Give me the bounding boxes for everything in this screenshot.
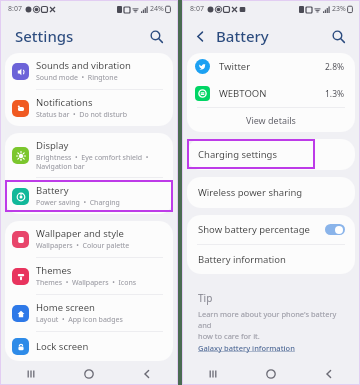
staticText: 8:07 [190, 4, 204, 14]
staticText: Twitter [219, 60, 325, 73]
staticText: Brightness • Eye comfort shield • Naviga… [36, 153, 149, 171]
button[interactable]: Wireless power sharing [187, 177, 355, 208]
button[interactable]: Search [145, 25, 167, 47]
staticText: Wallpapers • Colour palette [36, 241, 130, 251]
staticText: Learn more about your phone's battery an… [198, 309, 345, 341]
button[interactable]: Recents [202, 363, 224, 385]
button[interactable]: Recents [20, 363, 42, 385]
staticText: Themes • Wallpapers • Icons [36, 278, 137, 288]
staticText: Show battery percentage [198, 223, 325, 236]
button[interactable]: Back [136, 363, 158, 385]
staticText: Layout • App icon badges [36, 315, 123, 325]
staticText: Battery [36, 184, 69, 197]
staticText: 1.3% [325, 88, 345, 100]
staticText: Home screen [36, 301, 95, 314]
button[interactable]: Display [5, 133, 173, 177]
button[interactable]: Notifications [5, 90, 173, 126]
button[interactable]: Wallpaper and style [5, 221, 173, 257]
staticText: Display [36, 139, 69, 152]
button[interactable]: Back [190, 26, 210, 46]
staticText: Battery information [198, 253, 286, 266]
button[interactable]: Search [327, 25, 349, 47]
button[interactable]: View details [187, 108, 355, 132]
button[interactable]: WEBTOON [187, 80, 355, 107]
staticText: 2.8% [325, 61, 345, 73]
button[interactable]: Themes [5, 258, 173, 294]
staticText: 24% [150, 4, 164, 14]
button[interactable]: Home screen [5, 295, 173, 331]
button[interactable]: Galaxy battery information [198, 343, 295, 353]
staticText: 23% [332, 4, 346, 14]
button[interactable]: Home [78, 363, 100, 385]
button[interactable]: Twitter [187, 53, 355, 80]
staticText: Wireless power sharing [198, 186, 303, 199]
button[interactable]: Battery information [187, 245, 355, 274]
staticText: Battery [216, 26, 269, 46]
staticText: Notifications [36, 96, 93, 109]
button[interactable]: Show battery percentage [187, 215, 355, 244]
button[interactable]: Battery [5, 178, 173, 214]
staticText: Sound mode • Ringtone [36, 73, 118, 83]
staticText: Charging settings [198, 148, 277, 161]
staticText: Status bar • Do not disturb [36, 110, 127, 120]
staticText: Sounds and vibration [36, 59, 131, 72]
staticText: Power saving • Charging [36, 198, 120, 208]
staticText: Wallpaper and style [36, 227, 124, 240]
staticText: 8:07 [8, 4, 22, 14]
button[interactable]: Lock screen [5, 332, 173, 361]
button[interactable]: Charging settings [187, 139, 355, 170]
staticText: Themes [36, 264, 72, 277]
staticText: View details [246, 114, 296, 126]
button[interactable]: Home [260, 363, 282, 385]
staticText: WEBTOON [219, 87, 325, 100]
staticText: Galaxy battery information [198, 343, 295, 353]
staticText: Settings [15, 26, 74, 46]
button[interactable]: Sounds and vibration [5, 53, 173, 89]
staticText: Lock screen [36, 340, 89, 353]
button[interactable]: Back [318, 363, 340, 385]
staticText: Tip [198, 291, 213, 305]
